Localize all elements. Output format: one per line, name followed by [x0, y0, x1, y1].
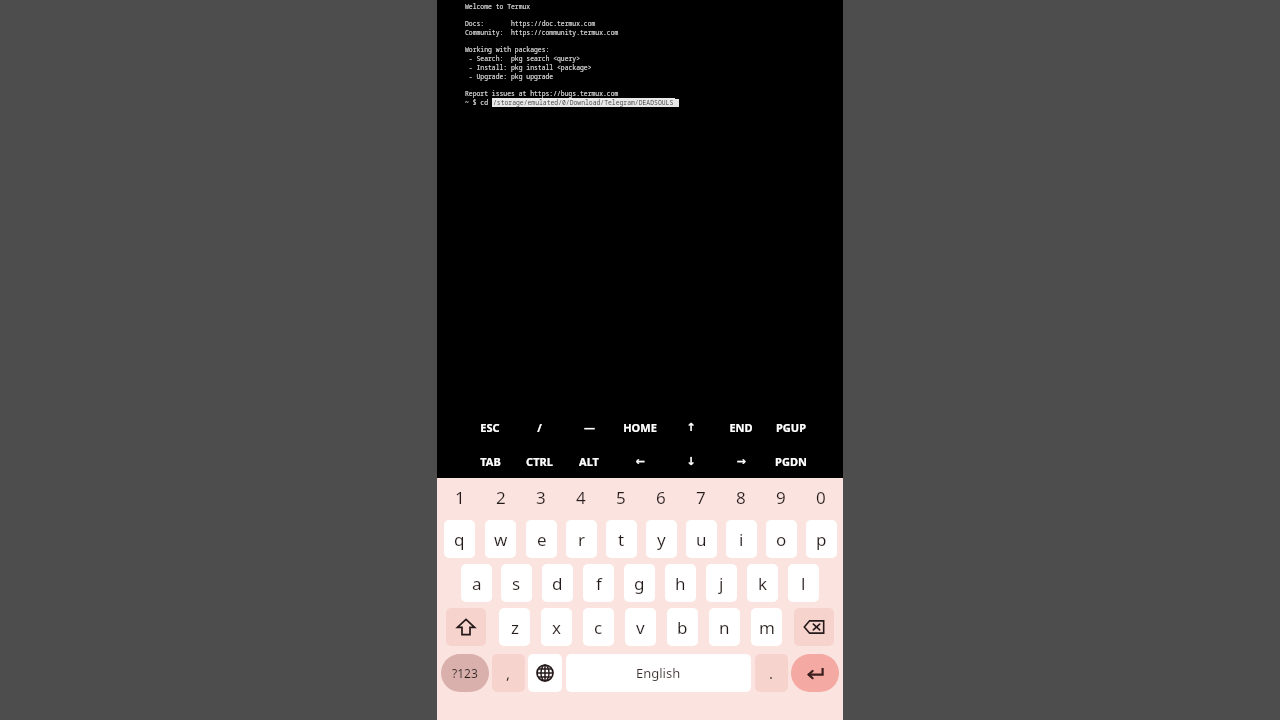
button[interactable]: t: [606, 520, 637, 558]
staticText: 2: [496, 486, 506, 509]
button[interactable]: Enter: [791, 654, 839, 692]
staticText: ←: [635, 455, 645, 468]
button[interactable]: m: [751, 608, 782, 646]
button[interactable]: i: [726, 520, 757, 558]
button[interactable]: CTRL: [513, 444, 565, 478]
button[interactable]: j: [706, 564, 737, 602]
staticText: t: [618, 528, 625, 551]
staticText: English: [636, 664, 681, 682]
staticText: n: [719, 616, 730, 639]
button[interactable]: ESC: [464, 410, 516, 444]
staticText: ,: [506, 663, 511, 683]
button[interactable]: l: [788, 564, 819, 602]
button[interactable]: PGDN: [765, 444, 817, 478]
button[interactable]: 3: [521, 478, 561, 517]
button[interactable]: ?123: [441, 654, 489, 692]
button[interactable]: p: [806, 520, 837, 558]
button[interactable]: ←: [614, 444, 666, 478]
button[interactable]: 1: [439, 478, 480, 517]
staticText: 0: [816, 486, 826, 509]
staticText: e: [537, 528, 547, 551]
button[interactable]: w: [485, 520, 516, 558]
staticText: w: [494, 528, 508, 551]
button[interactable]: English: [566, 654, 751, 692]
staticText: k: [758, 572, 768, 595]
button[interactable]: .: [755, 654, 788, 692]
staticText: j: [719, 572, 724, 595]
button[interactable]: Shift: [446, 608, 486, 646]
staticText: ↓: [686, 455, 696, 468]
staticText: - Upgrade: pkg upgrade: [465, 72, 554, 81]
button[interactable]: 2: [480, 478, 521, 517]
button[interactable]: r: [566, 520, 597, 558]
button[interactable]: TAB: [464, 444, 516, 478]
staticText: 5: [616, 486, 626, 509]
button[interactable]: 7: [681, 478, 721, 517]
button[interactable]: u: [686, 520, 717, 558]
button[interactable]: 4: [561, 478, 601, 517]
staticText: q: [454, 528, 465, 551]
button[interactable]: n: [709, 608, 740, 646]
button[interactable]: ALT: [563, 444, 615, 478]
staticText: b: [677, 616, 688, 639]
button[interactable]: →: [715, 444, 767, 478]
button[interactable]: END: [715, 410, 767, 444]
button[interactable]: c: [583, 608, 614, 646]
button[interactable]: ,: [492, 654, 525, 692]
staticText: c: [594, 616, 603, 639]
button[interactable]: Backspace: [794, 608, 834, 646]
staticText: s: [512, 572, 521, 595]
button[interactable]: b: [667, 608, 698, 646]
button[interactable]: h: [665, 564, 696, 602]
button[interactable]: g: [624, 564, 655, 602]
staticText: f: [596, 572, 602, 595]
button[interactable]: —: [563, 410, 615, 444]
button[interactable]: d: [542, 564, 573, 602]
button[interactable]: HOME: [614, 410, 666, 444]
button[interactable]: a: [461, 564, 492, 602]
button[interactable]: q: [444, 520, 475, 558]
button[interactable]: e: [526, 520, 557, 558]
staticText: r: [578, 528, 586, 551]
button[interactable]: ↑: [665, 410, 717, 444]
staticText: PGDN: [775, 454, 807, 469]
button[interactable]: x: [541, 608, 572, 646]
staticText: y: [657, 528, 666, 551]
button[interactable]: 6: [641, 478, 681, 517]
button[interactable]: k: [747, 564, 778, 602]
staticText: l: [801, 572, 806, 595]
staticText: 3: [536, 486, 546, 509]
button[interactable]: 0: [801, 478, 841, 517]
button[interactable]: /: [513, 410, 565, 444]
staticText: —: [584, 420, 595, 435]
button[interactable]: ↓: [665, 444, 717, 478]
staticText: END: [729, 420, 753, 435]
staticText: u: [696, 528, 707, 551]
button[interactable]: 9: [761, 478, 801, 517]
staticText: /storage/emulated/0/Download/Telegram/DE…: [493, 98, 674, 107]
button[interactable]: 8: [721, 478, 761, 517]
staticText: HOME: [623, 420, 657, 435]
button[interactable]: f: [583, 564, 614, 602]
staticText: ALT: [579, 454, 599, 469]
button[interactable]: PGUP: [765, 410, 817, 444]
staticText: Docs: https://doc.termux.com: [465, 19, 596, 28]
button[interactable]: v: [625, 608, 656, 646]
button[interactable]: z: [499, 608, 530, 646]
staticText: g: [634, 572, 645, 595]
button[interactable]: o: [766, 520, 797, 558]
staticText: PGUP: [776, 420, 806, 435]
staticText: ESC: [480, 420, 500, 435]
staticText: TAB: [480, 454, 501, 469]
staticText: m: [759, 616, 775, 639]
button[interactable]: 5: [601, 478, 641, 517]
staticText: ?123: [452, 665, 478, 681]
button[interactable]: s: [501, 564, 532, 602]
staticText: o: [776, 528, 787, 551]
staticText: - Install: pkg install <package>: [465, 63, 592, 72]
button[interactable]: y: [646, 520, 677, 558]
staticText: 7: [696, 486, 706, 509]
staticText: x: [552, 616, 561, 639]
button[interactable]: Change language: [528, 654, 562, 692]
staticText: 6: [656, 486, 666, 509]
